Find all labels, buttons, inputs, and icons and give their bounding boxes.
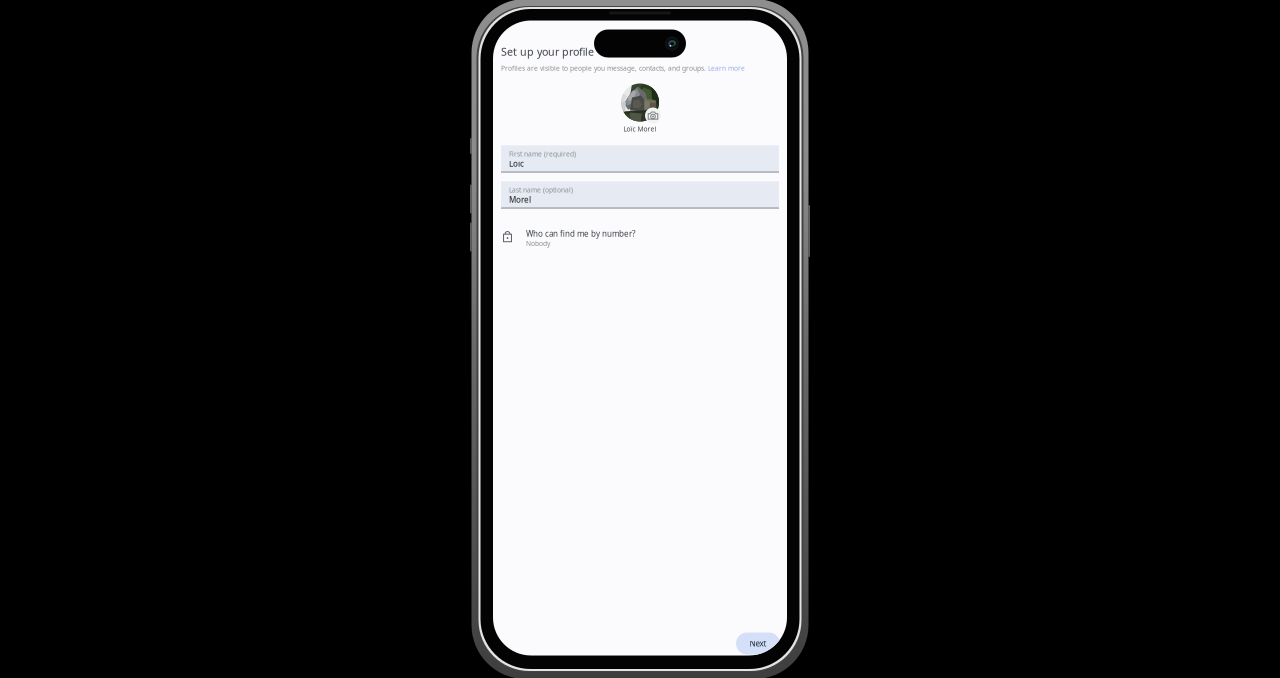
button[interactable]: Change profile photo — [493, 72, 787, 133]
staticText: Loïc — [509, 158, 524, 169]
staticText: Nobody — [526, 239, 550, 248]
staticText: Who can find me by number? — [526, 228, 635, 239]
button[interactable]: Last name (optional) — [493, 181, 779, 208]
staticText: Set up your profile — [501, 44, 594, 59]
staticText: Loïc Morel — [623, 124, 656, 133]
staticText: Next — [749, 638, 766, 649]
staticText: Profiles are visible to people you messa… — [501, 64, 706, 73]
staticText: Last name (optional) — [509, 185, 573, 194]
staticText: Learn more — [708, 64, 745, 73]
button[interactable]: First name (required) — [493, 145, 779, 172]
staticText: First name (required) — [509, 149, 576, 158]
staticText: Morel — [509, 194, 531, 205]
button[interactable]: Who can find me by number? — [493, 208, 787, 248]
button[interactable]: Learn more — [708, 64, 745, 73]
button[interactable]: Next — [736, 632, 780, 654]
